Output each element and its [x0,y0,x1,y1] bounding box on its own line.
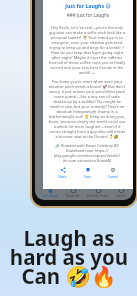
other: Share [60,167,66,173]
other: Cancel [110,167,116,173]
staticText: Just for Laughs 😄 [43,2,133,9]
staticText: Share [58,175,67,179]
button[interactable]: Friendly Roast [87,187,109,198]
staticText: Roast Me [66,194,81,198]
staticText: Laugh as hard as you Can 🤣🔥 [4,224,134,290]
other: Save [85,167,91,173]
staticText: You know you're short when even your ele… [48,79,126,139]
button[interactable]: Roast Me [66,187,81,198]
button[interactable]: Saved [116,187,126,198]
button[interactable]: Share [56,167,69,179]
staticText: ### Just for Laughs [43,12,133,18]
button[interactable]: Cancel [106,167,120,179]
staticText: Friendly Roast [87,194,109,198]
staticText: 🔗 Roasted with Roast Celebrity AI! Downl… [50,143,124,163]
button[interactable]: Save [82,167,93,179]
staticText: Hey Kevin, let's be real—you're the only… [48,25,126,75]
button[interactable]: Fake Roast [42,187,59,198]
staticText: Fake Roast [42,194,59,198]
staticText: Save [84,175,91,179]
staticText: Saved [116,194,126,198]
staticText: Cancel [108,175,118,179]
